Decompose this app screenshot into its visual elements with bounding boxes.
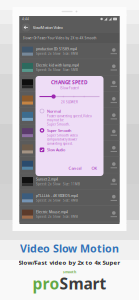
staticText: Super Smooth. [47,122,70,126]
staticText: Speed: 2x Slow Size: 12MB [36,84,80,88]
staticText: converting speed. [47,142,73,146]
staticText: Speed: 3x Slow Size: 5MB [36,68,78,72]
staticText: smooth [63,269,76,274]
staticText: OK [91,165,97,171]
staticText: Speed: 2x Slow Size: 11MB [36,182,80,186]
button[interactable]: Sunset 2.mp4 [19,173,119,190]
button[interactable]: Sunset run.mp4 [19,92,119,108]
button[interactable]: Cancel [66,165,83,171]
staticText: pro [32,273,59,294]
button[interactable]: Dance night.mp4 [19,76,119,92]
staticText: Faster converting speed,Video may not be [47,114,92,122]
staticText: Slower Or Faster Your Video by 2X to 4X … [22,36,96,40]
staticText: CHANGE SPEED [51,79,88,85]
button[interactable]: Electric kid with lamp.mp4 [19,59,119,76]
staticText: Slow/Fast video by 2x to 4x Super [18,258,120,266]
staticText: Speed: 3x Slow Size: 4MB [36,198,78,202]
staticText: Speed: 3x Slow Size: 7MB [36,133,78,137]
staticText: Dance night.mp4 [36,79,63,84]
staticText: Sunset 2.mp4 [36,177,58,181]
button[interactable]: pTLLLkk - 4K VIDEOS.mp4 [19,190,119,206]
button[interactable]: Slow Audio [35,147,103,152]
staticText: production ID: 51589.mp4 [36,47,77,51]
staticText: 4:44 [22,17,29,21]
button[interactable]: Super Smooth [35,128,103,146]
button[interactable]: Normal [35,108,103,126]
button[interactable]: Beach waves.mp4 [19,108,119,124]
staticText: SlowMotion Video [32,25,62,30]
staticText: Super Smooth [47,128,71,133]
button[interactable]: Electric Mouse.mp4 [19,206,119,222]
staticText: Super Smooth video comparatively slower [47,133,78,141]
button[interactable]: Back [22,23,30,31]
staticText: Normal [47,108,61,114]
staticText: Electric kid with lamp.mp4 [36,63,79,67]
staticText: Sunset run.mp4 [36,95,61,100]
staticText: Speed: 4x Slow Size: 3MB [36,101,78,105]
staticText: 2X SLOWER [61,100,78,104]
staticText: Cancel [68,165,81,171]
staticText: City lights.mp4 [36,128,60,133]
staticText: Smart [59,273,106,294]
staticText: Speed: 4x Slow Size: 2MB [36,166,78,170]
staticText: Speed: 2x Slow Size: 8MB [36,215,78,219]
staticText: Speed: 2x Slow Size: 9MB [36,117,78,121]
button[interactable]: OK [89,165,99,171]
staticText: Video Slow Motion [20,241,119,255]
staticText: pTLLLkk - 4K VIDEOS.mp4 [36,193,78,198]
button[interactable]: Water drop.mp4 [19,157,119,173]
staticText: Slow Audio [47,147,65,152]
button[interactable]: Skate park.mp4 [19,141,119,157]
staticText: Speed: 2x Slow Size: 6MB [36,149,78,153]
staticText: (Slow Faster) [60,86,79,90]
button[interactable]: City lights.mp4 [19,124,119,141]
staticText: Beach waves.mp4 [36,112,66,116]
staticText: Speed: 2x Slow Size: 8MB [36,52,78,56]
staticText: Electric Mouse.mp4 [36,210,68,214]
staticText: Skate park.mp4 [36,144,61,149]
button[interactable]: production ID: 51589.mp4 [19,43,119,59]
